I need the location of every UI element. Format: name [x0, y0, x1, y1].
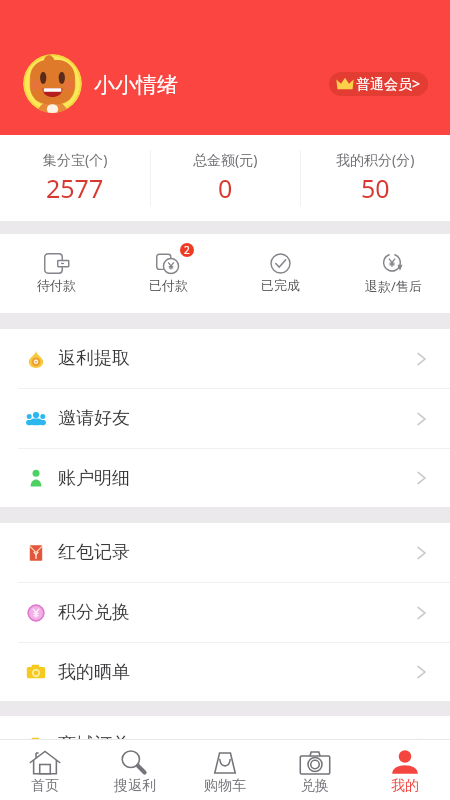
staticText: 兑换 [301, 777, 329, 795]
staticText: 小小情绪 [94, 72, 178, 98]
button[interactable]: 购物车 [180, 740, 270, 800]
button[interactable]: 普通会员> [329, 72, 428, 96]
staticText: 退款/售后 [365, 277, 422, 295]
button[interactable]: 2 [112, 234, 224, 313]
button[interactable]: 集分宝(个) [0, 135, 150, 221]
staticText: 已付款 [149, 277, 188, 293]
staticText: 2577 [46, 171, 104, 205]
staticText: 购物车 [204, 777, 246, 795]
staticText: 50 [361, 171, 390, 205]
button[interactable]: 首页 [0, 740, 90, 800]
staticText: 返利提取 [58, 347, 130, 370]
button[interactable]: 红包记录 [0, 523, 450, 582]
staticText: 普通会员> [356, 74, 421, 93]
staticText: 账户明细 [58, 467, 130, 490]
staticText: 2 [184, 243, 190, 257]
staticText: 搜返利 [114, 777, 156, 795]
button[interactable]: 总金额(元) [151, 135, 300, 221]
staticText: 待付款 [37, 277, 76, 293]
button[interactable]: 我的 [360, 740, 450, 800]
staticText: 0 [218, 171, 233, 205]
button[interactable]: 邀请好友 [0, 389, 450, 448]
staticText: 邀请好友 [58, 407, 130, 430]
staticText: 总金额(元) [193, 150, 258, 169]
button[interactable]: 我的积分(分) [301, 135, 450, 221]
button[interactable]: 兑换 [270, 740, 360, 800]
button[interactable]: 账户明细 [0, 449, 450, 507]
button[interactable]: 积分兑换 [0, 583, 450, 642]
button[interactable]: 待付款 [0, 234, 112, 313]
button[interactable]: 已完成 [224, 234, 337, 313]
button[interactable]: 我的晒单 [0, 643, 450, 701]
staticText: 集分宝(个) [43, 150, 108, 169]
staticText: 已完成 [261, 277, 300, 293]
staticText: 我的 [391, 777, 419, 795]
staticText: 商城订单 [58, 733, 130, 739]
staticText: 我的晒单 [58, 661, 130, 684]
button[interactable]: 搜返利 [90, 740, 180, 800]
button[interactable]: 商城订单 [0, 733, 450, 739]
staticText: 红包记录 [58, 541, 130, 564]
button[interactable]: 退款/售后 [337, 234, 450, 313]
staticText: 首页 [31, 777, 59, 795]
button[interactable]: 返利提取 [0, 329, 450, 388]
staticText: 我的积分(分) [336, 150, 415, 169]
staticText: 积分兑换 [58, 601, 130, 624]
